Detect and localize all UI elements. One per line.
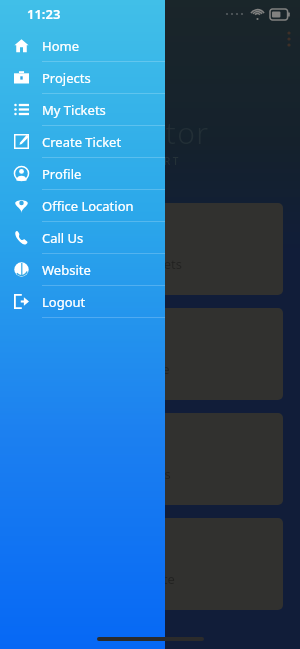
staticText: Create Ticket <box>42 133 122 151</box>
button[interactable]: Projects <box>0 62 165 93</box>
button[interactable]: Website <box>17 518 283 610</box>
button[interactable]: Office Location <box>0 190 165 221</box>
button[interactable]: Call Us <box>17 413 283 505</box>
staticText: SUPPORT <box>119 154 181 168</box>
button[interactable]: More options <box>278 28 300 50</box>
button[interactable]: My Tickets <box>0 94 165 125</box>
staticText: Website <box>42 261 91 279</box>
staticText: Logout <box>42 293 86 311</box>
staticText: Projects <box>42 69 91 87</box>
button[interactable]: Call Us <box>0 222 165 253</box>
staticText: Call Us <box>42 229 84 247</box>
staticText: Website <box>126 570 175 588</box>
staticText: 11:23 <box>27 5 61 23</box>
staticText: Profile <box>130 360 170 378</box>
button[interactable]: Website <box>0 254 165 285</box>
staticText: Call Us <box>129 465 171 483</box>
staticText: equator <box>91 112 210 153</box>
button[interactable]: Profile <box>0 158 165 189</box>
staticText: My Tickets <box>42 101 106 119</box>
staticText: Office Location <box>42 197 134 215</box>
staticText: My Tickets <box>118 255 182 273</box>
button[interactable]: Home <box>0 30 165 61</box>
button[interactable]: My Tickets <box>17 203 283 295</box>
staticText: Home <box>42 37 79 55</box>
button[interactable]: Create Ticket <box>0 126 165 157</box>
button[interactable]: Logout <box>0 286 165 317</box>
staticText: Profile <box>42 165 82 183</box>
button[interactable]: Profile <box>17 308 283 400</box>
